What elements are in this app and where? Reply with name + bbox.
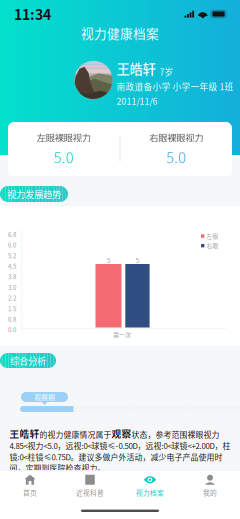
staticText: 王皓轩的视力健康情况属于观察状态，参考范围裸眼视力 4.85<视力<5.0，远视… [9,427,230,473]
staticText: 3.0 [8,283,16,292]
staticText: 0.0 [8,325,16,334]
staticText: 5 [136,256,139,265]
button[interactable]: 我的 [180,471,240,501]
staticText: 南政道备小学 小学一年级 1班 [116,80,233,93]
staticText: 5.0 [166,146,186,167]
staticText: 5 [107,256,110,265]
staticText: 4.5 [8,262,16,271]
staticText: 左眼 [206,232,218,240]
staticText: 5.2 [8,251,16,260]
staticText: 6.0 [8,240,16,249]
staticText: 视力健康档案 [81,24,159,42]
button[interactable]: 首页 [0,471,60,501]
staticText: 5.0 [54,146,74,167]
staticText: 王皓轩 [116,59,155,78]
staticText: 11:34 [14,4,51,24]
staticText: 2011/11/6 [116,95,157,107]
staticText: 7岁 [159,66,173,78]
staticText: 综合分析 [10,354,46,367]
button[interactable]: 近视科普 [60,471,120,501]
staticText: 观察期 [34,392,55,402]
staticText: 0.8 [8,315,16,324]
staticText: 我的 [203,488,217,497]
button[interactable]: 视力档案 [120,471,180,501]
staticText: 首页 [23,488,37,497]
staticText: 视力档案 [136,488,164,497]
staticText: 视力发展趋势 [7,187,61,201]
staticText: 2.2 [8,293,16,302]
staticText: 右眼 [206,242,218,250]
staticText: 左眼裸眼视力 [37,131,91,144]
staticText: 近视科普 [76,488,104,497]
staticText: 6.8 [8,230,16,239]
staticText: 1.5 [8,304,16,313]
staticText: 3.8 [8,272,16,281]
staticText: 第一次 [113,330,131,339]
staticText: 右眼裸眼视力 [149,131,203,144]
